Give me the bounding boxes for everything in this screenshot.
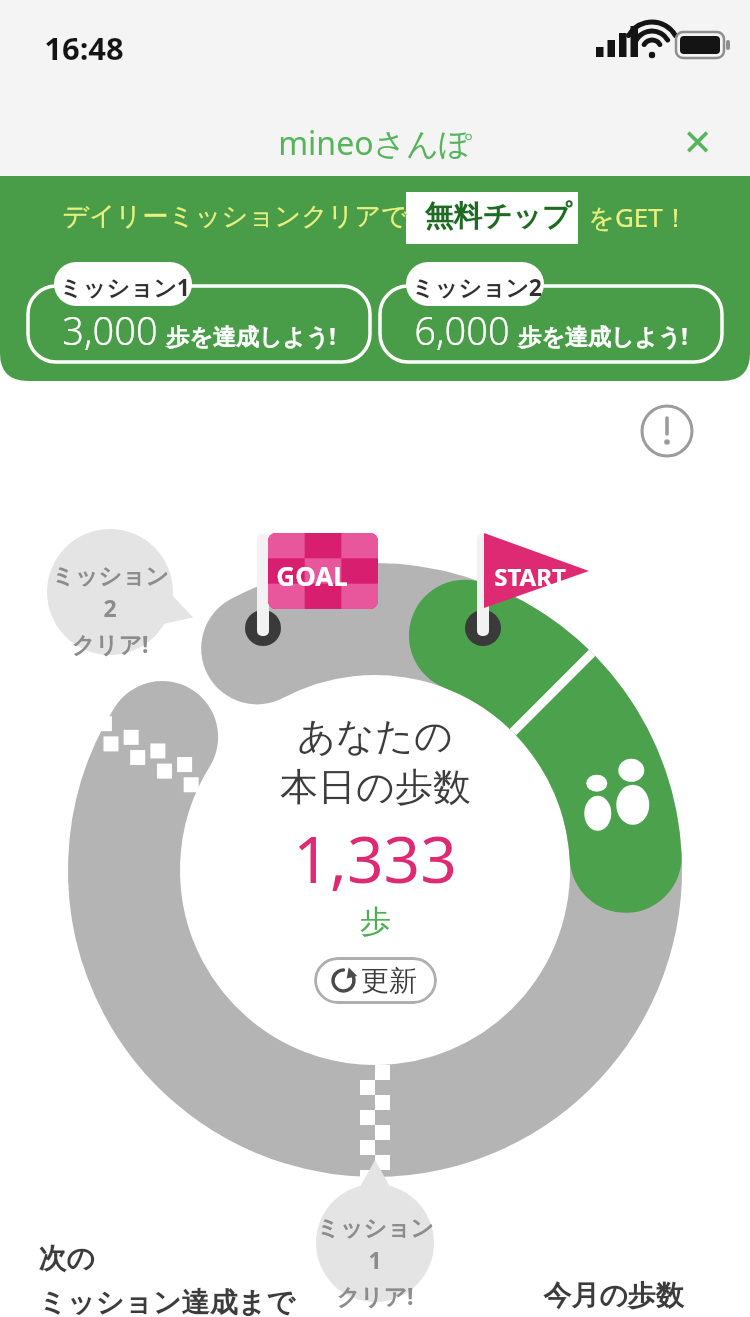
staticText: あなたの [297,712,453,760]
staticText: 歩 [360,902,391,941]
staticText: 3,000 [62,304,158,356]
staticText: ミッション2 [47,562,173,623]
staticText: デイリーミッションクリアで [62,200,408,233]
staticText: ミッション1 [313,1214,437,1275]
button[interactable]: Close [662,108,732,178]
staticText: ミッション1 [59,271,190,302]
button[interactable]: 更新 [314,957,437,1004]
staticText: 本日の歩数 [280,763,471,811]
staticText: 歩を達成しよう! [518,320,688,351]
staticText: GOAL [276,558,348,593]
staticText: 16:48 [44,27,124,69]
button[interactable]: 無料チップ [418,194,578,239]
staticText: 更新 [361,963,417,998]
staticText: ミッション達成まで [38,1285,295,1317]
staticText: START [494,560,566,593]
staticText: 1,333 [293,815,457,902]
staticText: mineoさんぽ [278,121,472,165]
staticText: 6,000 [414,304,510,356]
staticText: をGET！ [588,199,689,235]
button[interactable]: 6,000 [380,286,722,362]
staticText: クリア! [336,1280,414,1311]
staticText: クリア! [71,628,149,659]
staticText: 次の [38,1241,95,1276]
button[interactable]: 3,000 [28,286,370,362]
staticText: ミッション2 [411,271,542,302]
staticText: 今月の歩数 [543,1278,684,1313]
staticText: 無料チップ [424,198,572,235]
staticText: ✕ [682,122,713,164]
staticText: 歩を達成しよう! [166,320,336,351]
